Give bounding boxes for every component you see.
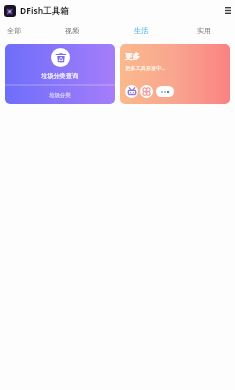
button[interactable]: 全部: [1, 22, 27, 39]
button[interactable]: 实用: [191, 22, 217, 39]
staticText: 垃圾分类: [49, 92, 71, 99]
button[interactable]: 视频: [59, 22, 85, 39]
button[interactable]: More: [156, 86, 174, 97]
staticText: 更多: [125, 52, 140, 61]
staticText: 垃圾分类查询: [41, 72, 79, 80]
button[interactable]: Menu: [220, 0, 235, 21]
staticText: 更多工具开发中...: [125, 64, 166, 71]
staticText: 生活: [134, 26, 148, 35]
button[interactable]: 垃圾分类查询: [5, 44, 115, 104]
button[interactable]: 更多: [120, 44, 230, 104]
staticText: 实用: [197, 26, 211, 35]
button[interactable]: Tool: [140, 85, 153, 98]
staticText: DFish工具箱: [20, 5, 69, 17]
button[interactable]: 生活: [128, 22, 154, 39]
button[interactable]: Bilibili: [125, 85, 138, 98]
staticText: 全部: [7, 26, 21, 35]
staticText: 视频: [65, 26, 79, 35]
